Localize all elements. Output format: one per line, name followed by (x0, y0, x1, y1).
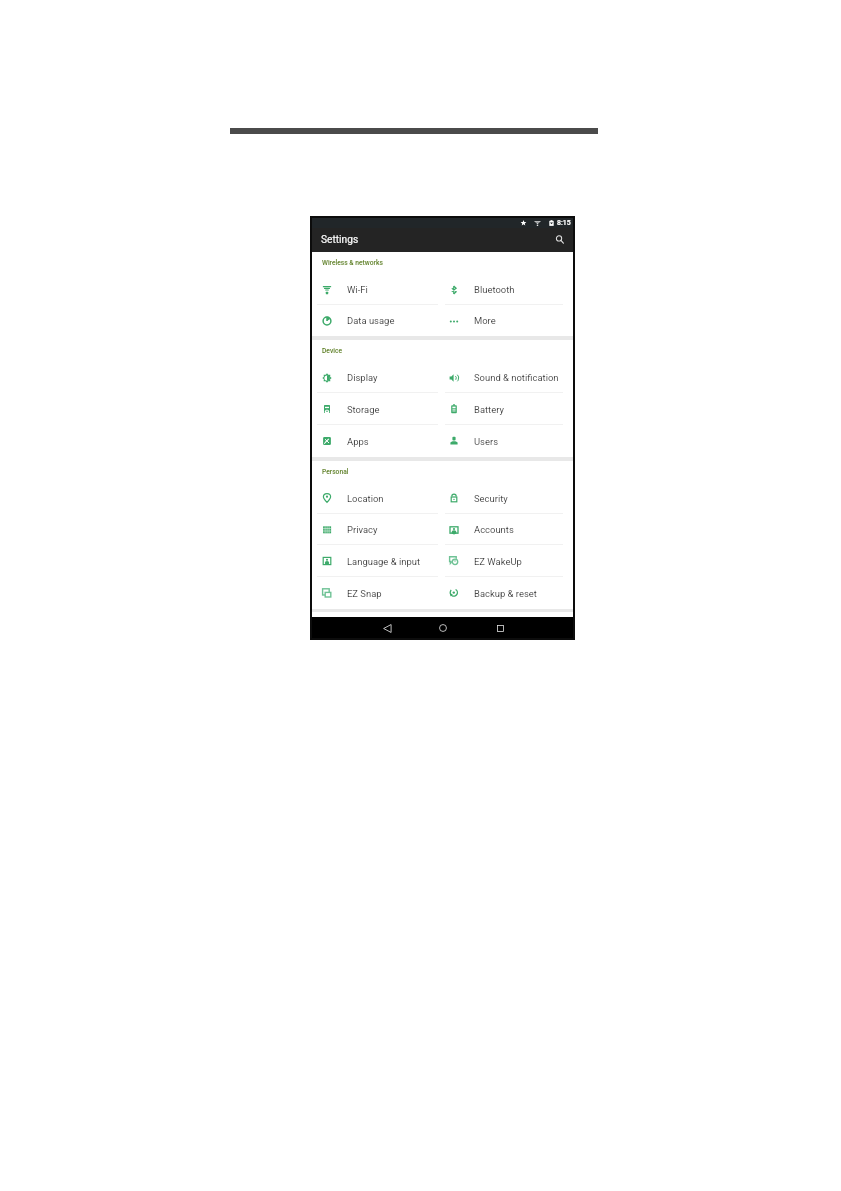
staticText: Location (347, 493, 384, 504)
button[interactable]: Back (379, 620, 395, 636)
button[interactable]: Apps (312, 425, 439, 457)
staticText: Storage (347, 404, 380, 415)
staticText: Privacy (347, 524, 378, 535)
staticText: Accounts (474, 524, 514, 535)
button[interactable]: Sound & notification (439, 362, 573, 393)
staticText: Backup & reset (474, 588, 537, 599)
staticText: Display (347, 372, 378, 383)
button[interactable]: Bluetooth (439, 274, 573, 305)
button[interactable]: Display (312, 362, 439, 393)
staticText: Apps (347, 436, 369, 447)
staticText: Device (322, 347, 343, 355)
staticText: Battery (474, 404, 504, 415)
button[interactable]: Privacy (312, 514, 439, 545)
button[interactable]: Security (439, 482, 573, 514)
button[interactable]: Language & input (312, 545, 439, 577)
staticText: Security (474, 493, 508, 504)
staticText: Wi-Fi (347, 284, 368, 295)
button[interactable]: Users (439, 425, 573, 457)
staticText: Personal (322, 468, 349, 476)
staticText: Settings (321, 234, 359, 246)
button[interactable]: Battery (439, 393, 573, 425)
button[interactable]: EZ WakeUp (439, 545, 573, 577)
button[interactable]: Search (553, 233, 567, 247)
button[interactable]: Wi-Fi (312, 274, 439, 305)
button[interactable]: More (439, 305, 573, 336)
button[interactable]: EZ Snap (312, 577, 439, 609)
button[interactable]: Accounts (439, 514, 573, 545)
button[interactable]: Location (312, 482, 439, 514)
staticText: Data usage (347, 315, 395, 326)
staticText: EZ Snap (347, 588, 382, 599)
staticText: Language & input (347, 556, 421, 567)
staticText: Sound & notification (474, 372, 559, 383)
button[interactable]: Recents (492, 620, 508, 636)
staticText: 8:15 (557, 219, 571, 227)
staticText: More (474, 315, 496, 326)
staticText: Wireless & networks (322, 259, 383, 267)
button[interactable]: Home (435, 620, 451, 636)
staticText: Users (474, 436, 499, 447)
button[interactable]: Backup & reset (439, 577, 573, 609)
staticText: EZ WakeUp (474, 556, 522, 567)
button[interactable]: Data usage (312, 305, 439, 336)
staticText: Bluetooth (474, 284, 515, 295)
button[interactable]: Storage (312, 393, 439, 425)
